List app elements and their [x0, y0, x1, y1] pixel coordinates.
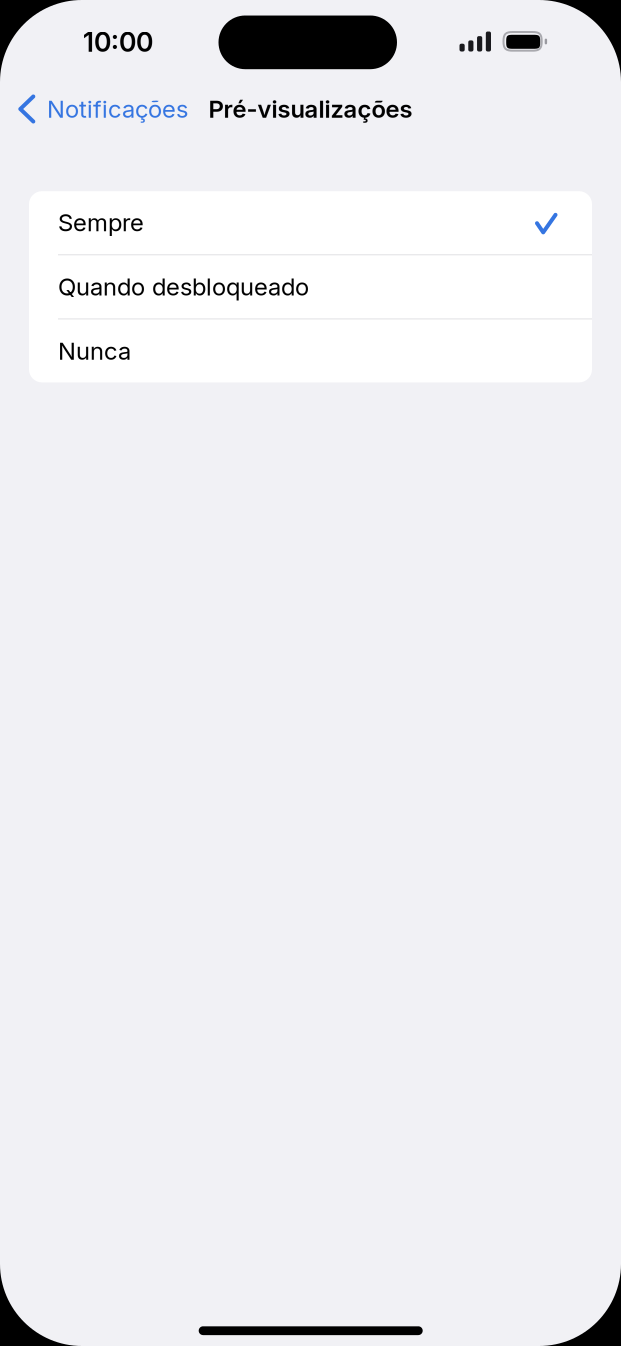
button[interactable]: Quando desbloqueado [29, 255, 592, 318]
staticText: Sempre [58, 208, 144, 237]
button[interactable]: Notificações [0, 81, 250, 137]
staticText: Pré-visualizações [208, 94, 412, 123]
staticText: Nunca [58, 336, 131, 365]
staticText: Quando desbloqueado [58, 272, 309, 301]
staticText: Notificações [47, 94, 188, 123]
staticText: 10:00 [83, 26, 153, 58]
button[interactable]: Sempre [29, 191, 592, 254]
button[interactable]: Nunca [29, 320, 592, 382]
